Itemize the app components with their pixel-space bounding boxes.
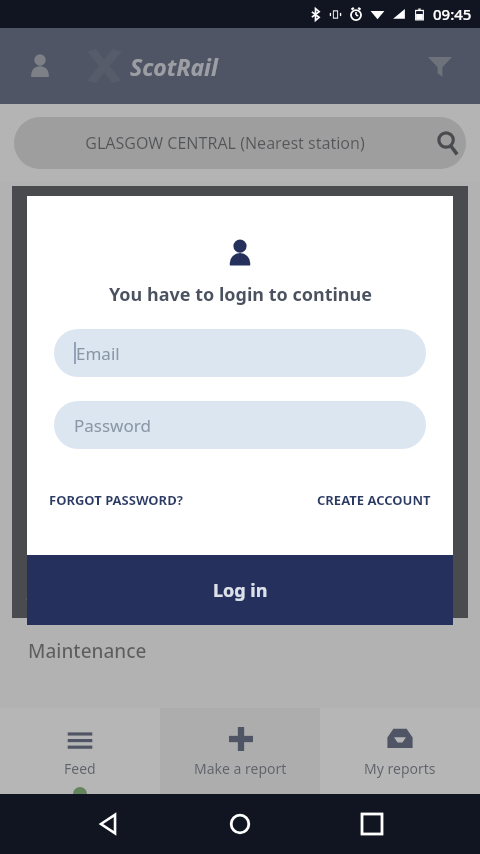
button[interactable]: FORGOT PASSWORD? bbox=[45, 487, 187, 513]
button[interactable]: Recents bbox=[348, 800, 396, 848]
button[interactable]: My reports bbox=[320, 708, 480, 794]
staticText: Maintenance bbox=[28, 638, 147, 664]
staticText: Log in bbox=[213, 578, 268, 603]
staticText: CREATE ACCOUNT bbox=[317, 491, 431, 509]
button[interactable]: CREATE ACCOUNT bbox=[313, 487, 435, 513]
staticText: GLASGOW CENTRAL (Nearest station) bbox=[14, 132, 436, 154]
button[interactable]: Log in bbox=[27, 555, 453, 625]
button[interactable]: Back bbox=[84, 800, 132, 848]
button[interactable]: Make a report bbox=[160, 708, 320, 794]
staticText: My reports bbox=[364, 759, 436, 778]
button[interactable]: Email bbox=[54, 329, 426, 377]
staticText: Support bbox=[404, 590, 454, 608]
staticText: Make a report bbox=[194, 759, 287, 778]
button[interactable]: Outages 6/Apr - Apr 27, 14:51 bbox=[12, 186, 468, 618]
button[interactable]: GLASGOW CENTRAL (Nearest station) bbox=[14, 117, 466, 169]
button[interactable]: Home bbox=[216, 800, 264, 848]
staticText: Email bbox=[76, 342, 120, 365]
staticText: You have to login to continue bbox=[109, 282, 372, 307]
staticText: Feed bbox=[64, 759, 96, 778]
staticText: FORGOT PASSWORD? bbox=[49, 491, 183, 509]
button[interactable]: Filter bbox=[418, 44, 462, 88]
staticText: 09:45 bbox=[433, 4, 472, 24]
button[interactable]: Password bbox=[54, 401, 426, 449]
staticText: ScotRail bbox=[130, 51, 218, 82]
button[interactable]: Feed bbox=[0, 708, 160, 794]
staticText: Password bbox=[74, 414, 151, 437]
button[interactable]: Account bbox=[18, 44, 62, 88]
